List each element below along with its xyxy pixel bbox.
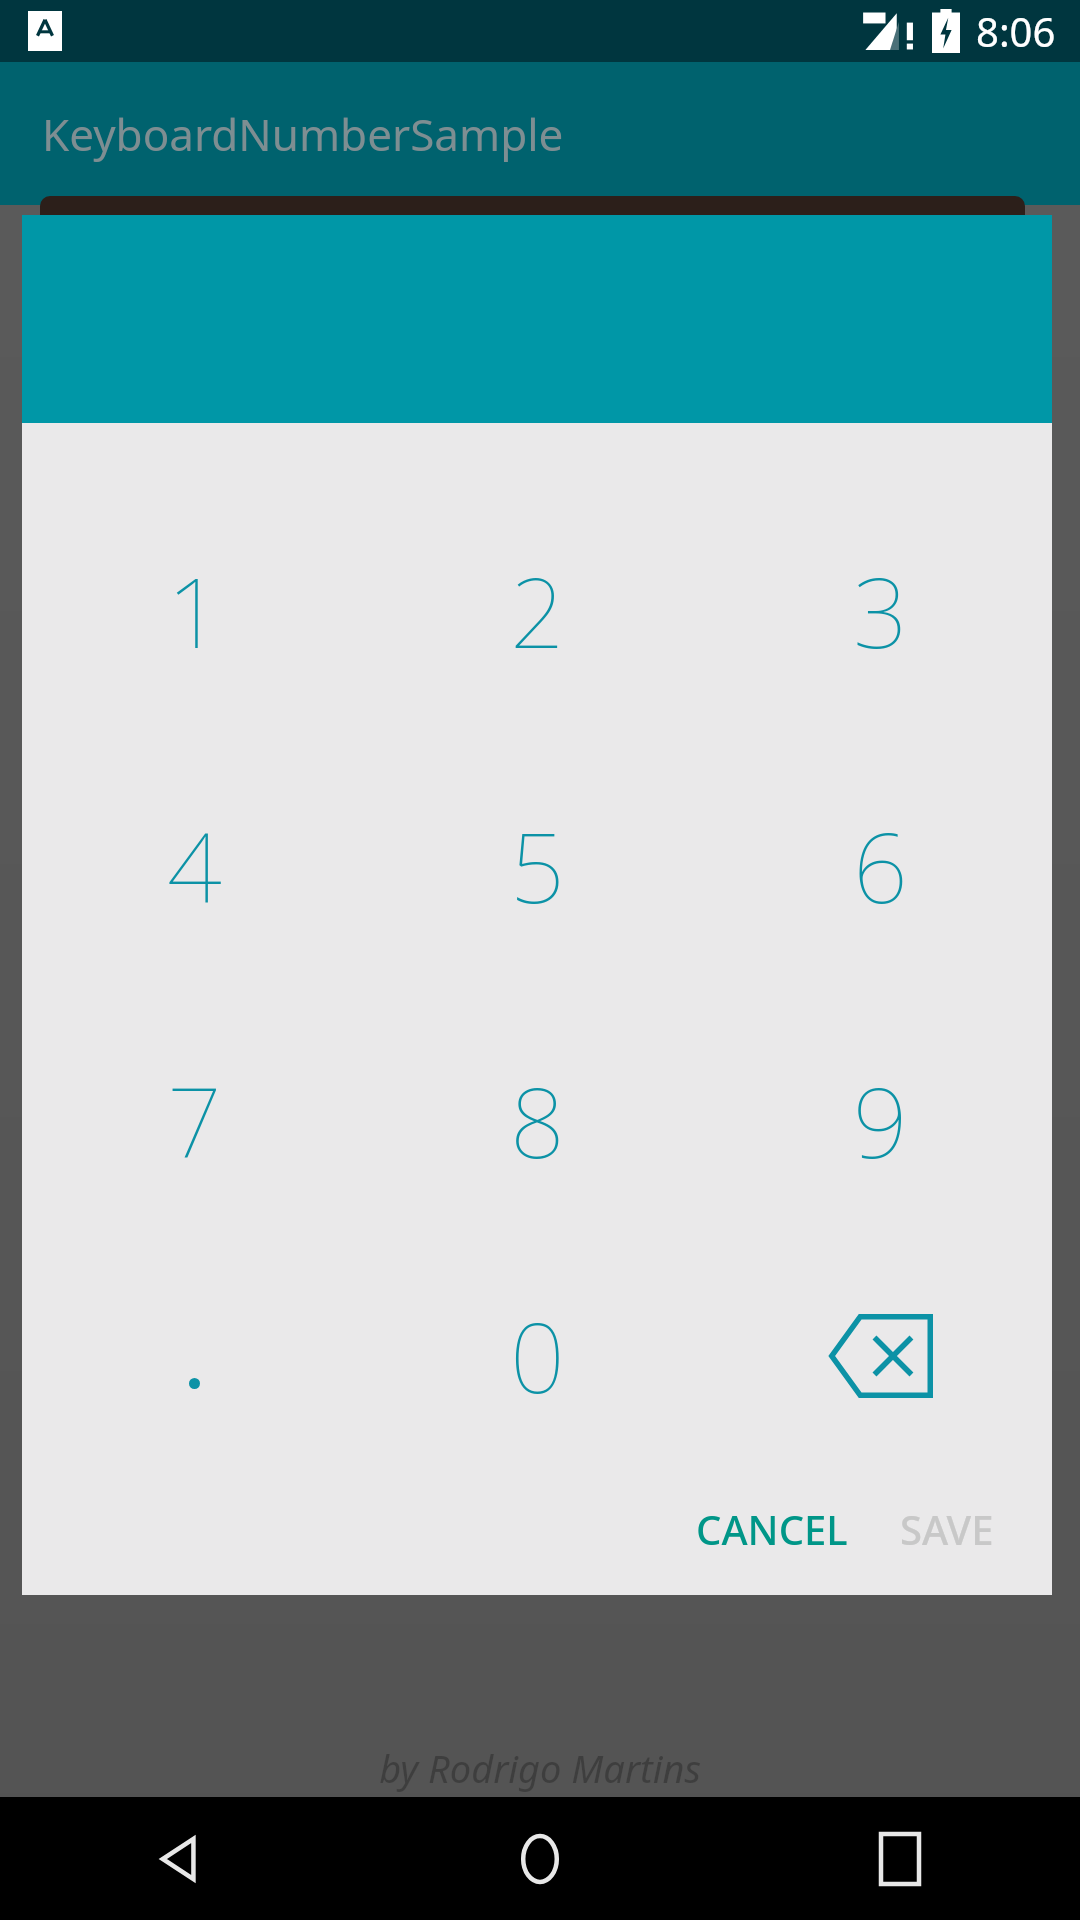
button[interactable]: 1 <box>22 483 366 738</box>
staticText: 2 <box>510 545 565 676</box>
button[interactable]: Recents <box>720 1797 1080 1920</box>
button[interactable]: CANCEL <box>674 1486 870 1572</box>
button[interactable]: 2 <box>366 483 709 738</box>
button[interactable]: 0 <box>366 1248 709 1463</box>
button[interactable]: 6 <box>709 738 1052 993</box>
staticText: CANCEL <box>696 1502 848 1556</box>
button[interactable] <box>22 1248 366 1463</box>
button[interactable]: Backspace <box>709 1248 1052 1463</box>
button[interactable]: 5 <box>366 738 709 993</box>
staticText: 3 <box>853 545 908 676</box>
staticText: SAVE <box>900 1502 994 1556</box>
staticText: 5 <box>510 800 565 931</box>
button[interactable]: Back <box>0 1797 360 1920</box>
staticText: 9 <box>853 1055 908 1186</box>
staticText: 6 <box>853 800 908 931</box>
staticText: 4 <box>167 800 222 931</box>
staticText: by Rodrigo Martins <box>0 1742 1080 1794</box>
button[interactable]: 7 <box>22 993 366 1248</box>
staticText: 8 <box>510 1055 565 1186</box>
staticText: 7 <box>167 1055 222 1186</box>
staticText: 0 <box>510 1290 565 1421</box>
staticText: 1 <box>167 545 222 676</box>
button[interactable]: SAVE <box>870 1486 1004 1572</box>
button[interactable]: 3 <box>709 483 1052 738</box>
staticText: KeyboardNumberSample <box>42 104 564 164</box>
staticText: 8:06 <box>976 4 1056 58</box>
button[interactable]: 4 <box>22 738 366 993</box>
button[interactable]: Home <box>360 1797 720 1920</box>
button[interactable]: 8 <box>366 993 709 1248</box>
button[interactable]: 9 <box>709 993 1052 1248</box>
